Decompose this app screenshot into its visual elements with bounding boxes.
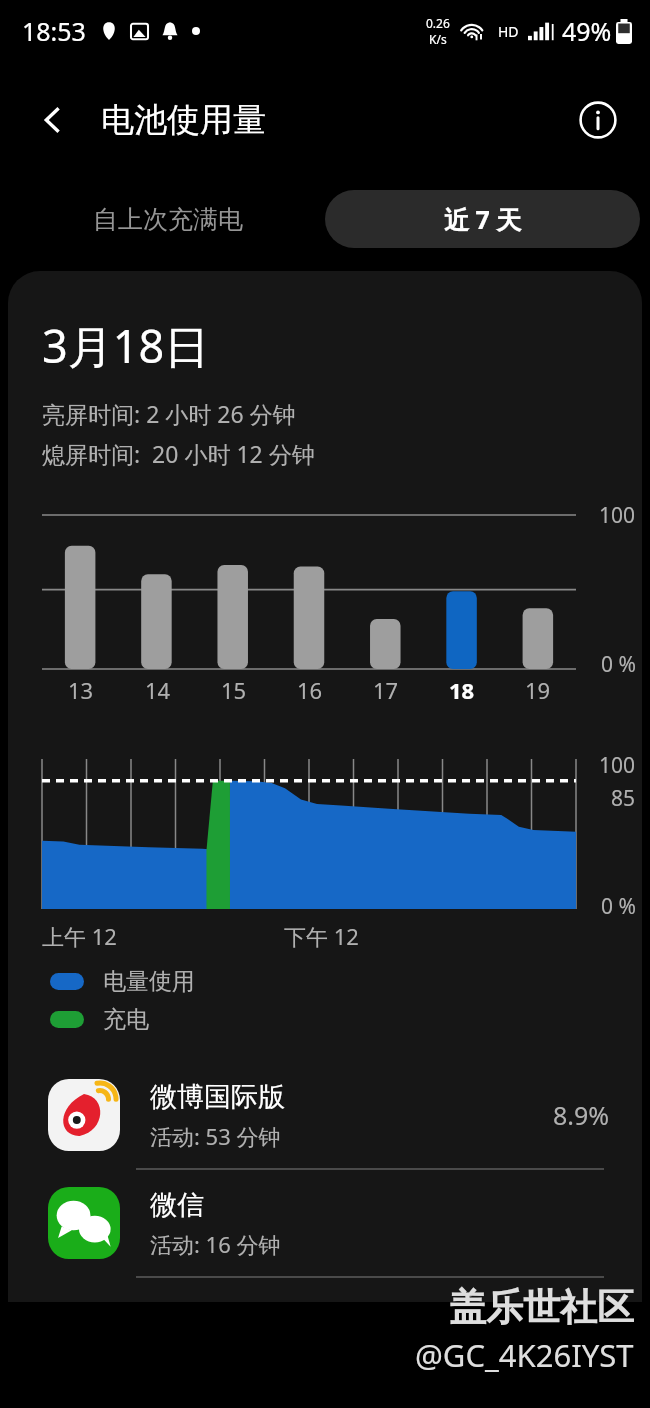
staticText: 亮屏时间: 2 小时 26 分钟 xyxy=(42,398,296,429)
staticText: 18:53 xyxy=(22,14,86,48)
staticText: 活动: 16 分钟 xyxy=(150,1229,281,1259)
staticText: 49% xyxy=(562,14,612,48)
button[interactable]: Information xyxy=(570,92,626,148)
staticText: 微信 xyxy=(150,1188,204,1222)
staticText: 近 7 天 xyxy=(444,202,522,236)
button[interactable]: 近 7 天 xyxy=(325,190,640,248)
staticText: 15 xyxy=(221,675,247,705)
button[interactable]: Back xyxy=(26,93,80,147)
staticText: 下午 12 xyxy=(284,921,359,951)
staticText: 8.9% xyxy=(553,1098,610,1132)
staticText: 85 xyxy=(611,784,636,813)
staticText: 盖乐世社区 xyxy=(449,1284,634,1331)
staticText: 100 xyxy=(599,751,636,780)
button[interactable]: 微信 xyxy=(8,1170,642,1278)
staticText: 熄屏时间: 20 小时 12 分钟 xyxy=(42,438,315,469)
staticText: 17 xyxy=(373,675,399,705)
staticText: 上午 12 xyxy=(42,921,117,951)
staticText: 18 xyxy=(449,675,475,705)
staticText: @GC_4K26IYST xyxy=(415,1334,634,1376)
staticText: 100 xyxy=(599,501,636,530)
staticText: K/s xyxy=(429,31,447,47)
staticText: HD xyxy=(498,22,519,41)
button[interactable]: 自上次充满电 xyxy=(10,190,325,248)
staticText: 电量使用 xyxy=(103,967,195,996)
staticText: 充电 xyxy=(103,1005,149,1034)
staticText: 0.26 xyxy=(426,15,450,31)
staticText: 微博国际版 xyxy=(150,1080,285,1114)
staticText: 14 xyxy=(145,675,171,705)
staticText: 自上次充满电 xyxy=(93,204,243,235)
staticText: 19 xyxy=(525,675,551,705)
staticText: 13 xyxy=(68,675,94,705)
staticText: 0 % xyxy=(601,892,636,921)
button[interactable]: 微博国际版 xyxy=(8,1062,642,1170)
staticText: 电池使用量 xyxy=(101,99,266,141)
staticText: 活动: 53 分钟 xyxy=(150,1121,281,1151)
staticText: 0 % xyxy=(601,650,636,679)
staticText: 16 xyxy=(297,675,323,705)
staticText: 3月18日 xyxy=(42,315,210,376)
